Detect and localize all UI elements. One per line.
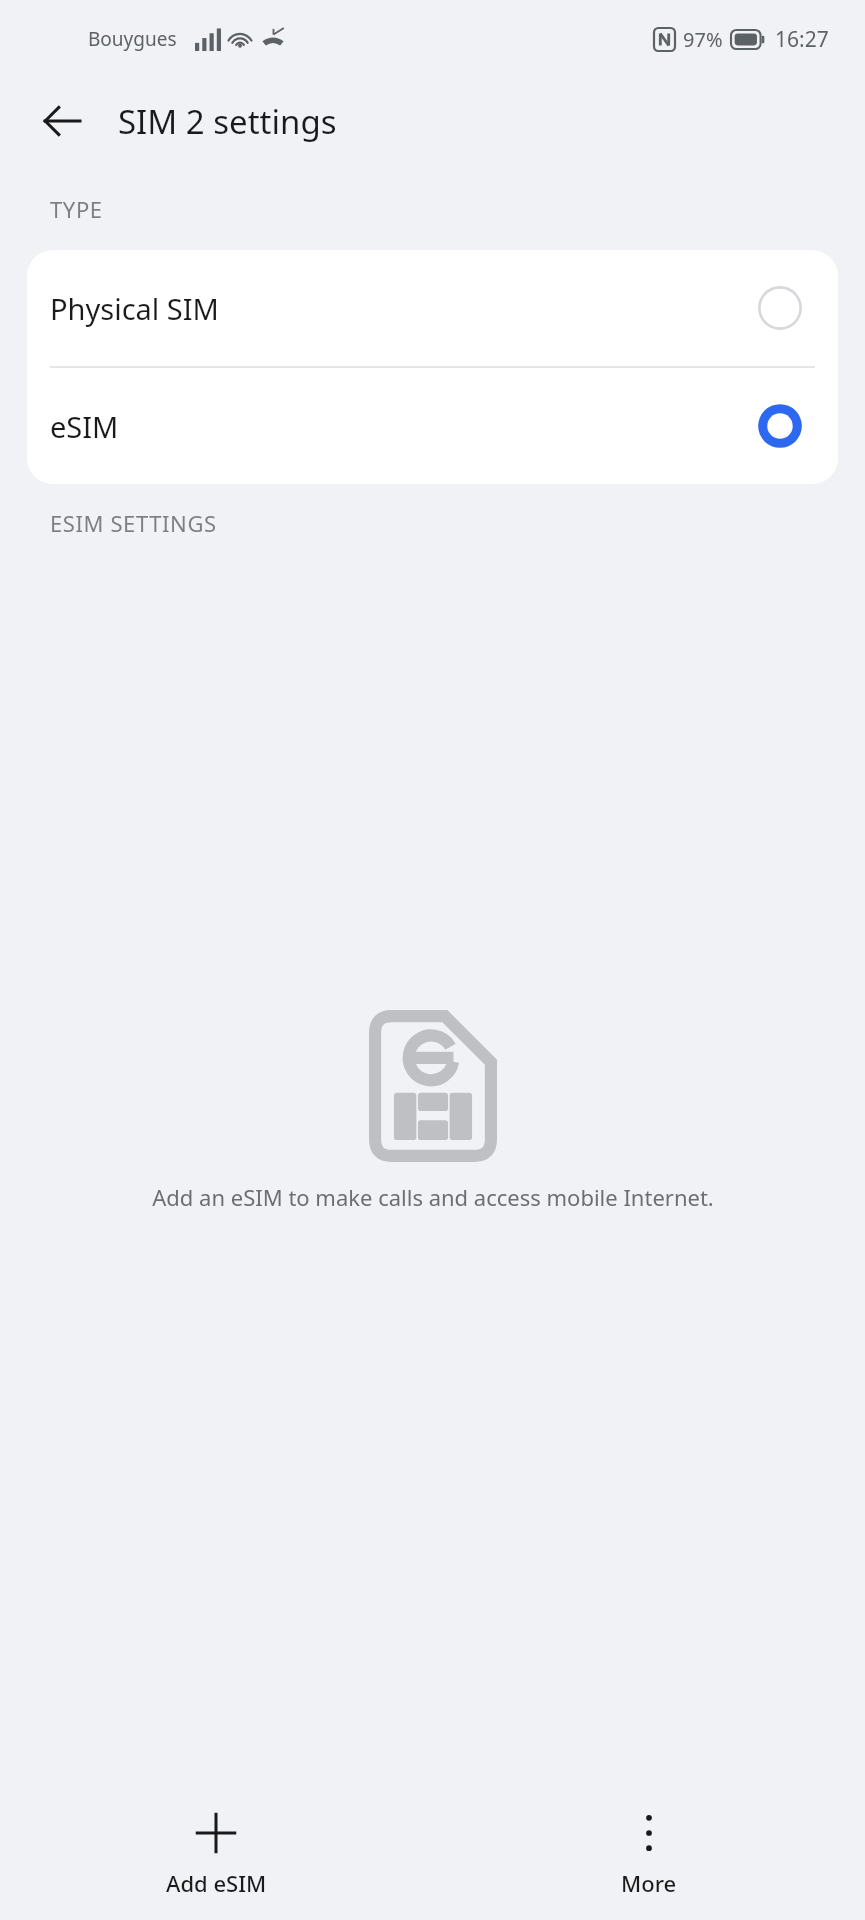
staticText: 97% [683,26,723,53]
staticText: 16:27 [775,25,829,54]
button[interactable]: eSIM [27,368,838,484]
staticText: SIM 2 settings [118,99,337,144]
staticText: More [621,1868,677,1898]
staticText: Bouygues [88,26,177,52]
staticText: Add an eSIM to make calls and access mob… [152,1182,714,1212]
button[interactable]: Add eSIM [0,1780,432,1920]
button[interactable]: More [432,1780,865,1920]
button[interactable]: Back [28,87,96,155]
staticText: Add eSIM [166,1868,267,1898]
staticText: Physical SIM [50,289,219,328]
staticText: eSIM [50,407,119,446]
button[interactable]: Physical SIM [27,250,838,366]
staticText: TYPE [50,194,103,224]
staticText: ESIM SETTINGS [50,508,217,538]
